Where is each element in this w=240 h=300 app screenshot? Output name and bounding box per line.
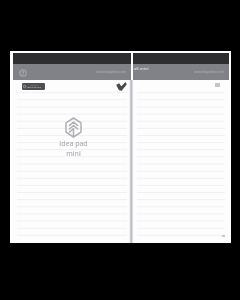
button[interactable]: Help — [19, 69, 27, 77]
button[interactable]: powered by — [22, 83, 45, 90]
staticText: Idea Pad Mini — [27, 86, 42, 89]
staticText: idea pad — [59, 139, 88, 149]
staticText: www.ideapadmini.com — [96, 70, 127, 74]
staticText: a6 mini — [134, 66, 149, 72]
staticText: www.ideapadmini.com — [194, 70, 225, 74]
staticText: powered by — [30, 84, 39, 86]
staticText: mini — [66, 149, 81, 159]
